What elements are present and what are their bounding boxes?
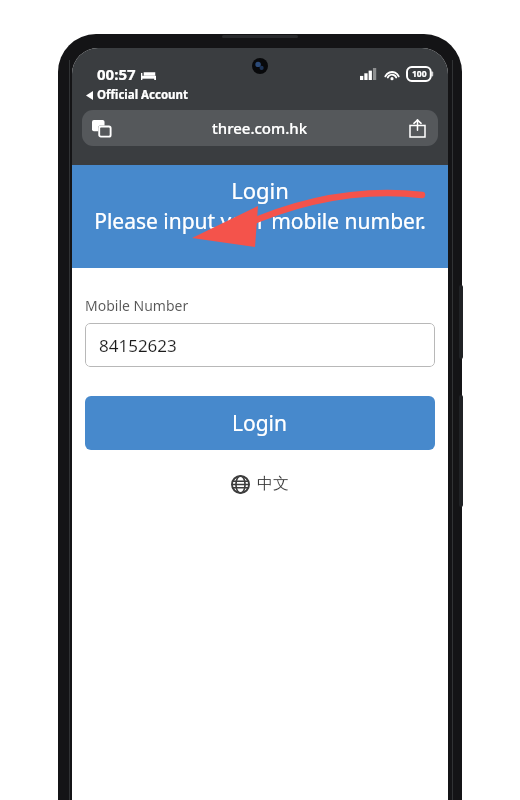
button[interactable]: Official Account (86, 87, 189, 103)
button[interactable]: Login (85, 396, 435, 450)
staticText: 00:57 (97, 64, 136, 84)
button[interactable]: three.com.hk (82, 110, 438, 146)
staticText: 中文 (257, 474, 289, 494)
staticText: Mobile Number (85, 296, 189, 315)
staticText: 84152623 (99, 334, 177, 357)
button[interactable]: 84152623 (85, 323, 435, 367)
staticText: Login (232, 409, 288, 438)
staticText: Login (231, 175, 289, 205)
staticText: Official Account (97, 87, 189, 103)
button[interactable]: Share (406, 117, 428, 139)
staticText: Please input your mobile number. (94, 207, 426, 236)
button[interactable]: Translate page (90, 117, 112, 139)
staticText: three.com.hk (212, 118, 308, 138)
button[interactable]: 中文 (225, 470, 295, 498)
staticText: 100 (412, 68, 427, 80)
